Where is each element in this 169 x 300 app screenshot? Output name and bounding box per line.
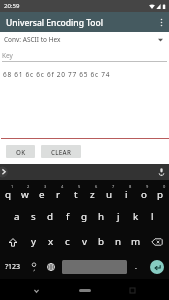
staticText: e bbox=[39, 188, 45, 201]
button[interactable]: s bbox=[25, 204, 42, 229]
staticText: n bbox=[115, 235, 122, 248]
staticText: s bbox=[31, 210, 36, 223]
staticText: a bbox=[14, 210, 20, 223]
staticText: q bbox=[5, 188, 12, 201]
staticText: l bbox=[151, 210, 154, 223]
button[interactable]: 8 bbox=[118, 180, 135, 204]
staticText: r bbox=[56, 188, 61, 201]
staticText: OK bbox=[16, 148, 26, 156]
button[interactable]: n bbox=[110, 229, 127, 254]
button[interactable]: 2 bbox=[16, 180, 33, 204]
staticText: t bbox=[74, 188, 78, 201]
staticText: 2 bbox=[27, 184, 30, 189]
staticText: o bbox=[141, 188, 147, 201]
button[interactable]: Space bbox=[62, 260, 127, 274]
button[interactable]: CLEAR bbox=[41, 145, 81, 158]
staticText: x bbox=[48, 235, 54, 248]
button[interactable]: d bbox=[42, 204, 59, 229]
staticText: u bbox=[106, 188, 113, 201]
button[interactable]: Conv: ASCII to Hex bbox=[0, 32, 169, 47]
button[interactable]: j bbox=[110, 204, 127, 229]
staticText: Conv: ASCII to Hex bbox=[4, 35, 61, 44]
button[interactable]: f bbox=[59, 204, 76, 229]
staticText: d bbox=[47, 210, 54, 223]
staticText: f bbox=[66, 210, 70, 223]
staticText: h bbox=[98, 210, 105, 223]
staticText: 5 bbox=[78, 184, 81, 189]
button[interactable]: More options bbox=[153, 12, 169, 32]
button[interactable]: Shift bbox=[0, 229, 25, 254]
staticText: p bbox=[157, 188, 164, 201]
button[interactable]: h bbox=[93, 204, 110, 229]
button[interactable]: 3 bbox=[33, 180, 50, 204]
staticText: 20:59 bbox=[4, 2, 20, 10]
staticText: 4 bbox=[61, 184, 64, 189]
staticText: 1 bbox=[11, 184, 14, 189]
button[interactable]: 9 bbox=[135, 180, 152, 204]
button[interactable]: OK bbox=[6, 145, 35, 158]
staticText: m bbox=[131, 235, 141, 248]
staticText: CLEAR bbox=[51, 148, 72, 156]
button[interactable]: Recent apps bbox=[122, 279, 143, 300]
button[interactable]: a bbox=[8, 204, 25, 229]
button[interactable]: Back bbox=[26, 279, 47, 300]
button[interactable]: ?123 bbox=[0, 254, 25, 279]
button[interactable]: 1 bbox=[0, 180, 16, 204]
button[interactable]: l bbox=[144, 204, 161, 229]
staticText: w bbox=[21, 188, 29, 201]
staticText: y bbox=[31, 235, 36, 248]
staticText: v bbox=[82, 235, 87, 248]
button[interactable]: 7 bbox=[101, 180, 118, 204]
staticText: Universal Encoding Tool bbox=[6, 17, 104, 29]
staticText: i bbox=[125, 188, 128, 201]
button[interactable]: Change keyboard language bbox=[42, 254, 59, 279]
staticText: b bbox=[98, 235, 105, 248]
button[interactable]: x bbox=[42, 229, 59, 254]
button[interactable] bbox=[25, 254, 42, 279]
button[interactable]: b bbox=[93, 229, 110, 254]
button[interactable]: m bbox=[127, 229, 144, 254]
staticText: k bbox=[133, 210, 139, 223]
button[interactable]: Backspace bbox=[144, 229, 169, 254]
button[interactable]: y bbox=[25, 229, 42, 254]
staticText: 3 bbox=[44, 184, 47, 189]
button[interactable]: c bbox=[59, 229, 76, 254]
staticText: c bbox=[65, 235, 70, 248]
button[interactable]: Expand suggestions bbox=[0, 164, 12, 180]
button[interactable]: Enter bbox=[144, 254, 169, 279]
button[interactable]: Home bbox=[72, 279, 98, 300]
staticText: ?123 bbox=[5, 262, 21, 272]
staticText: Key bbox=[2, 51, 13, 60]
staticText: 8 bbox=[129, 184, 132, 189]
button[interactable]: v bbox=[76, 229, 93, 254]
staticText: . bbox=[135, 262, 137, 272]
button[interactable]: . bbox=[127, 254, 144, 279]
staticText: j bbox=[117, 210, 120, 223]
button[interactable]: 6 bbox=[84, 180, 101, 204]
button[interactable]: Voice input bbox=[153, 164, 169, 180]
staticText: g bbox=[81, 210, 88, 223]
button[interactable]: 4 bbox=[50, 180, 67, 204]
staticText: 9 bbox=[146, 184, 149, 189]
staticText: 0 bbox=[163, 184, 166, 189]
staticText: 6 bbox=[95, 184, 98, 189]
button[interactable]: 5 bbox=[67, 180, 84, 204]
staticText: z bbox=[90, 188, 95, 201]
staticText: 7 bbox=[112, 184, 115, 189]
button[interactable]: k bbox=[127, 204, 144, 229]
button[interactable]: 0 bbox=[152, 180, 169, 204]
staticText: 68 61 6c 6c 6f 20 77 65 6c 74 bbox=[3, 70, 111, 79]
button[interactable]: g bbox=[76, 204, 93, 229]
